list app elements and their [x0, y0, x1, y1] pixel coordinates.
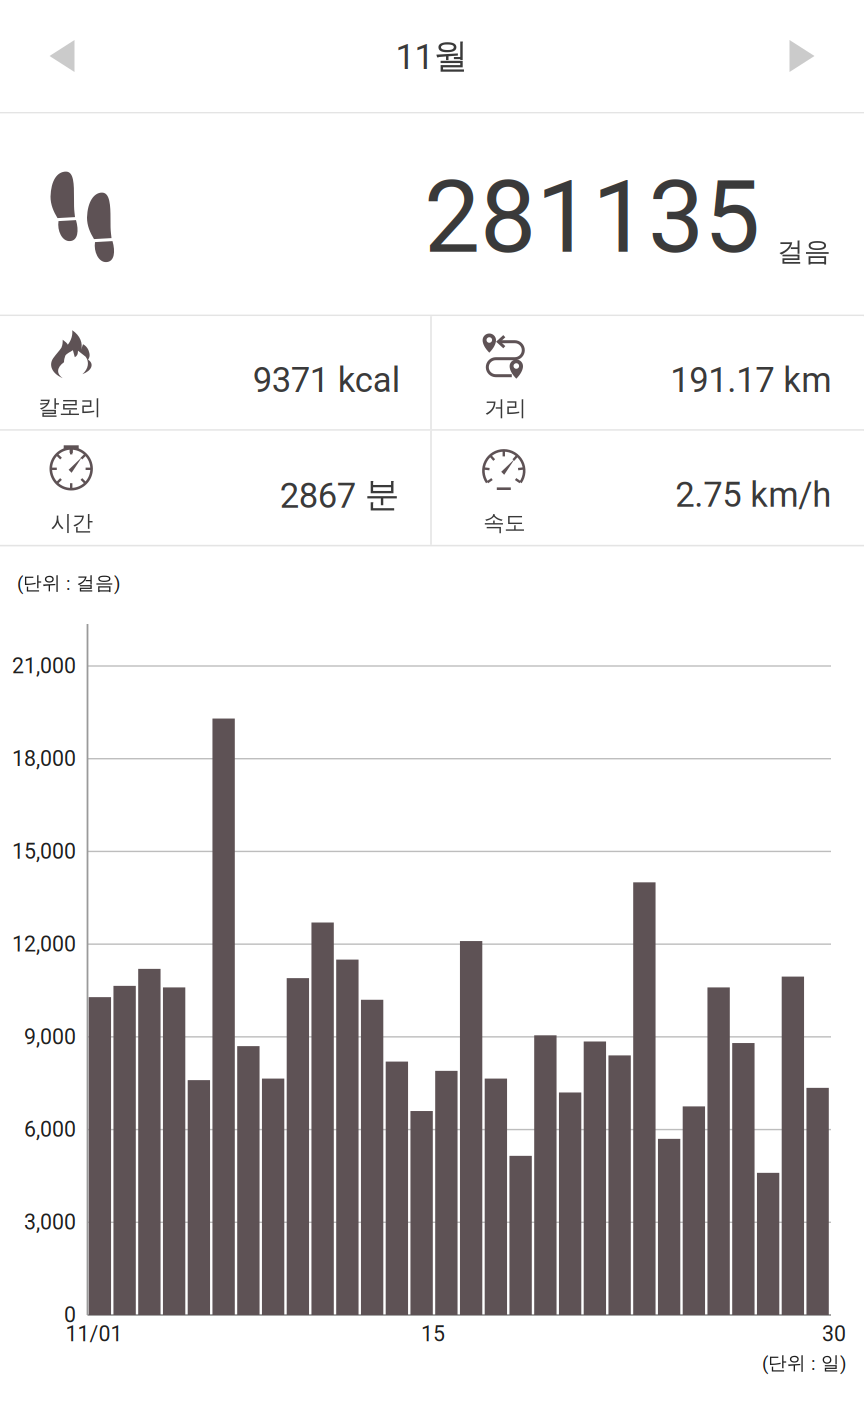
staticText: 0: [64, 1302, 76, 1327]
button[interactable]: 속도: [432, 431, 863, 545]
staticText: 281135: [424, 159, 760, 276]
staticText: 15: [421, 1321, 445, 1346]
staticText: 9,000: [24, 1024, 76, 1049]
button[interactable]: 칼로리: [0, 316, 431, 429]
staticText: 12,000: [12, 932, 76, 957]
staticText: 2867 분: [280, 473, 400, 517]
button[interactable]: 거리: [432, 316, 863, 429]
staticText: 15,000: [12, 839, 76, 864]
button[interactable]: Previous month: [0, 0, 124, 112]
staticText: 18,000: [12, 746, 76, 771]
staticText: 3,000: [24, 1210, 76, 1235]
staticText: (단위 : 걸음): [17, 571, 120, 595]
staticText: 속도: [483, 509, 525, 536]
button[interactable]: Next month: [740, 0, 864, 112]
staticText: 30: [822, 1321, 846, 1346]
staticText: 21,000: [12, 653, 76, 678]
staticText: 거리: [484, 395, 526, 422]
staticText: 191.17 km: [670, 360, 831, 400]
staticText: 2.75 km/h: [675, 474, 831, 515]
staticText: 시간: [51, 509, 93, 536]
button[interactable]: 시간: [0, 431, 431, 545]
staticText: 걸음: [777, 235, 831, 268]
staticText: 9371 kcal: [253, 360, 400, 400]
staticText: (단위 : 일): [762, 1351, 846, 1375]
staticText: 11월: [395, 34, 468, 78]
staticText: 칼로리: [38, 394, 101, 421]
staticText: 6,000: [24, 1117, 76, 1142]
staticText: 11/01: [65, 1321, 122, 1346]
